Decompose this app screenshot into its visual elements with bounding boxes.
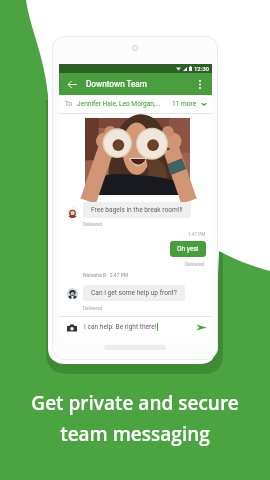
staticText: 11 more	[172, 100, 197, 108]
button[interactable]: Camera	[65, 321, 78, 334]
button[interactable]: Back	[64, 76, 80, 92]
staticText: team messaging	[60, 421, 210, 447]
staticText: Natasha R. 2:47 PM	[83, 272, 129, 278]
staticText: Downtown Team	[86, 79, 147, 89]
staticText: Delivered	[83, 306, 103, 312]
button[interactable]: Send	[194, 320, 208, 334]
staticText: Jennifer Hale, Leo Morgan,...	[77, 100, 161, 108]
button[interactable]: To	[59, 95, 212, 113]
staticText: Can I get some help up front?	[91, 289, 177, 297]
staticText: 1:47 PM	[188, 232, 206, 238]
staticText: To	[65, 100, 73, 108]
staticText: Oh yes!	[177, 245, 199, 253]
staticText: Free bagels in the break room!!!	[91, 206, 183, 214]
staticText: 12:30	[194, 65, 209, 72]
staticText: Get private and secure	[31, 390, 239, 416]
button[interactable]: More options	[192, 76, 208, 92]
staticText: Delivered	[83, 222, 103, 228]
staticText: Delivered	[185, 262, 205, 268]
staticText: I can help. Be right there!	[84, 323, 157, 331]
button[interactable]: Back	[59, 73, 212, 95]
